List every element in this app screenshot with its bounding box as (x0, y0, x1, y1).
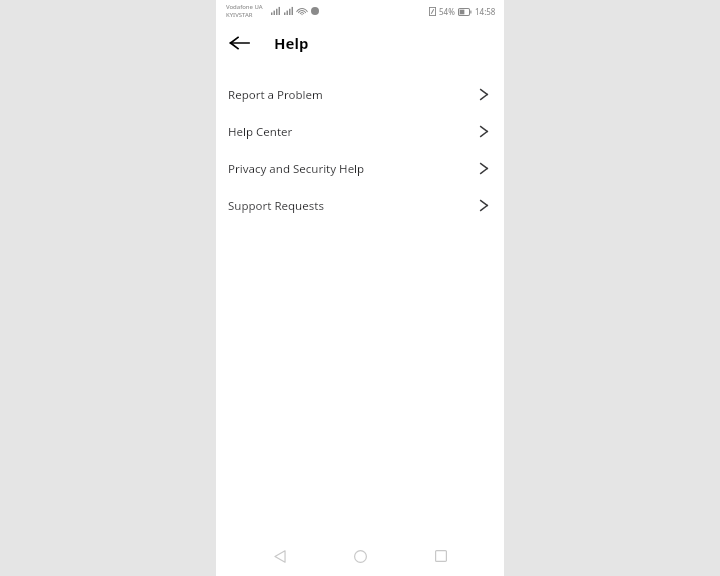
staticText: 14:58 (475, 6, 496, 17)
staticText: Report a Problem (228, 87, 323, 103)
staticText: Support Requests (228, 198, 324, 214)
button[interactable]: Home (343, 539, 377, 573)
button[interactable]: Help Center (216, 113, 504, 150)
staticText: 54% (439, 6, 455, 17)
staticText: Help Center (228, 124, 293, 140)
button[interactable]: Back (227, 31, 251, 55)
button[interactable]: Back (263, 539, 297, 573)
button[interactable]: Recents (424, 539, 458, 573)
staticText: Privacy and Security Help (228, 161, 365, 177)
staticText: Help (274, 33, 309, 53)
staticText: Vodafone UA (226, 3, 263, 11)
button[interactable]: Support Requests (216, 187, 504, 224)
button[interactable]: Report a Problem (216, 76, 504, 113)
button[interactable]: Privacy and Security Help (216, 150, 504, 187)
staticText: KYIVSTAR (226, 11, 253, 19)
